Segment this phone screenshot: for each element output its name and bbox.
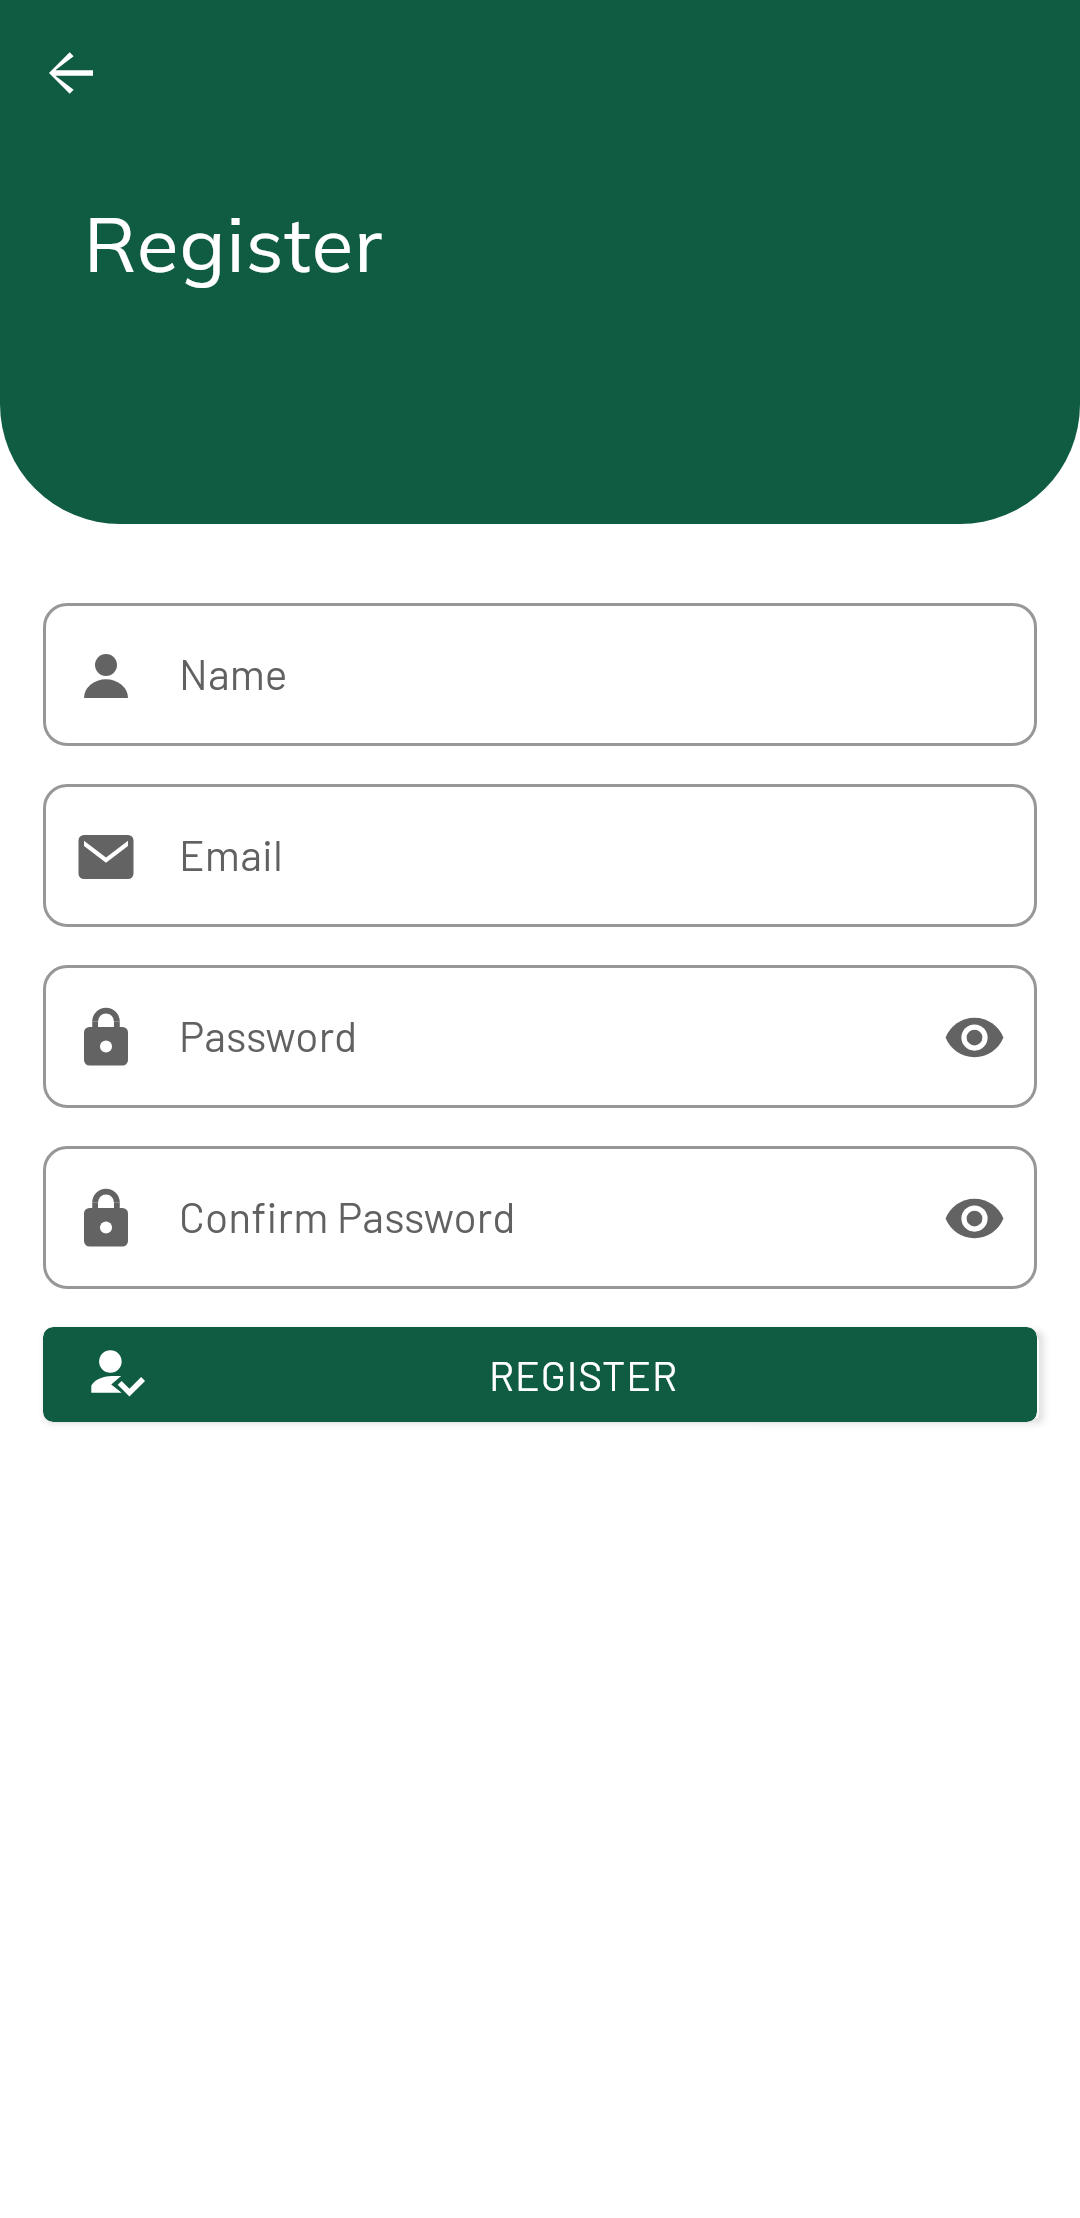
button[interactable]: Confirm Password <box>43 1146 1037 1289</box>
button[interactable]: Email <box>43 784 1037 927</box>
staticText: Confirm Password <box>179 1190 516 1241</box>
staticText: Password <box>179 1009 358 1060</box>
button[interactable]: Show password <box>929 1173 1019 1263</box>
button[interactable]: Name <box>43 603 1037 746</box>
button[interactable]: Password <box>43 965 1037 1108</box>
staticText: Name <box>179 647 288 698</box>
button[interactable]: REGISTER <box>43 1327 1037 1422</box>
button[interactable]: Back <box>23 25 119 121</box>
button[interactable]: Show password <box>929 992 1019 1082</box>
staticText: Register <box>84 196 384 291</box>
staticText: Email <box>179 828 283 879</box>
staticText: REGISTER <box>489 1350 678 1399</box>
